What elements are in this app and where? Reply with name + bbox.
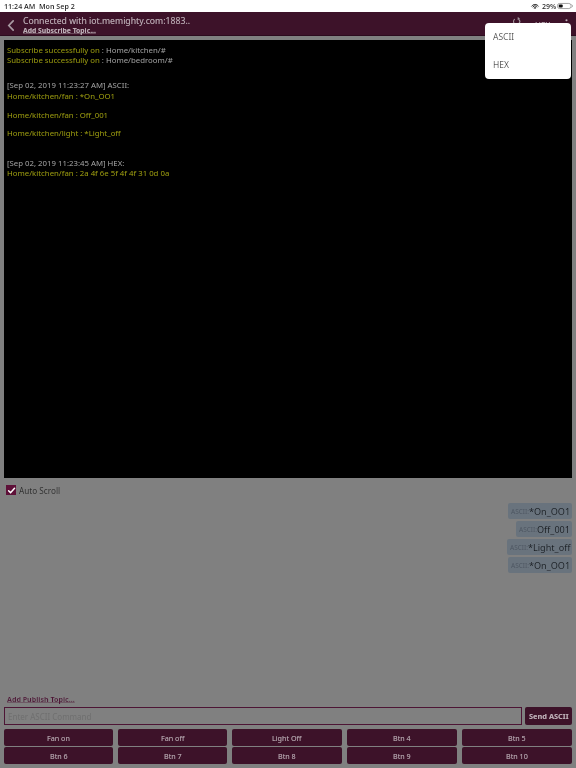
button[interactable]: ASCII:: [516, 521, 572, 537]
button[interactable]: ASCII:: [508, 503, 572, 519]
staticText: Fan off: [161, 733, 185, 743]
staticText: Mon Sep 2: [39, 1, 75, 11]
staticText: Btn 7: [164, 751, 182, 761]
staticText: ASCII:: [519, 525, 537, 534]
staticText: Btn 6: [50, 751, 68, 761]
button[interactable]: Btn 5: [462, 729, 572, 746]
button[interactable]: Refresh: [511, 14, 524, 27]
staticText: ASCII:: [511, 507, 529, 516]
button[interactable]: ASCII: [485, 23, 571, 51]
staticText: Btn 8: [278, 751, 296, 761]
button[interactable]: Light Off: [232, 729, 342, 746]
button[interactable]: ASCII:: [508, 557, 572, 573]
button[interactable]: Back: [1, 14, 21, 36]
staticText: HEX: [493, 59, 510, 71]
staticText: Home/kitchen/light : *Light_off: [7, 128, 121, 139]
staticText: *On_OO1: [529, 559, 571, 571]
staticText: Off_001: [537, 523, 571, 535]
staticText: Send ASCII: [529, 711, 569, 721]
staticText: Add Subscribe Topic...: [23, 26, 96, 35]
staticText: [Sep 02, 2019 11:23:45 AM] HEX:: [7, 158, 125, 169]
staticText: 29%: [542, 1, 557, 11]
button[interactable]: Fan off: [118, 729, 227, 746]
staticText: HEX: [535, 20, 551, 31]
button[interactable]: Enter ASCII Command: [4, 707, 522, 725]
staticText: Connected with iot.memighty.com:1883..: [23, 15, 191, 27]
staticText: [Sep 02, 2019 11:23:27 AM] ASCII:: [7, 80, 130, 91]
staticText: ASCII:: [511, 561, 529, 570]
staticText: Fan on: [47, 733, 70, 743]
staticText: Light Off: [272, 733, 302, 743]
staticText: Auto Scroll: [19, 485, 61, 496]
staticText: Btn 4: [393, 733, 411, 743]
staticText: *On_OO1: [529, 505, 571, 517]
staticText: Add Publish Topic...: [7, 694, 75, 704]
button[interactable]: HEX: [485, 51, 571, 79]
button[interactable]: More options: [561, 15, 571, 34]
button[interactable]: Btn 8: [232, 747, 342, 764]
button[interactable]: Btn 10: [462, 747, 572, 764]
staticText: Enter ASCII Command: [8, 711, 92, 722]
button[interactable]: Auto Scroll: [6, 484, 61, 496]
button[interactable]: Btn 4: [347, 729, 457, 746]
staticText: Subscribe successfully on : Home/kitchen…: [7, 45, 166, 56]
staticText: 11:24 AM: [4, 1, 36, 11]
staticText: *Light_off: [528, 541, 571, 553]
staticText: ASCII: [493, 31, 515, 43]
button[interactable]: ASCII:: [507, 539, 572, 555]
staticText: ASCII:: [510, 543, 528, 552]
button[interactable]: Btn 6: [4, 747, 113, 764]
button[interactable]: Btn 7: [118, 747, 227, 764]
staticText: Btn 9: [393, 751, 411, 761]
staticText: Subscribe successfully on : Home/bedroom…: [7, 55, 173, 66]
staticText: Btn 5: [508, 733, 526, 743]
staticText: Home/kitchen/fan : Off_001: [7, 110, 109, 121]
staticText: Home/kitchen/fan : 2a 4f 6e 5f 4f 4f 31 …: [7, 168, 170, 179]
button[interactable]: Fan on: [4, 729, 113, 746]
staticText: Btn 10: [506, 751, 528, 761]
staticText: Home/kitchen/fan : *On_OO1: [7, 91, 116, 102]
button[interactable]: Send ASCII: [525, 707, 572, 725]
button[interactable]: Btn 9: [347, 747, 457, 764]
